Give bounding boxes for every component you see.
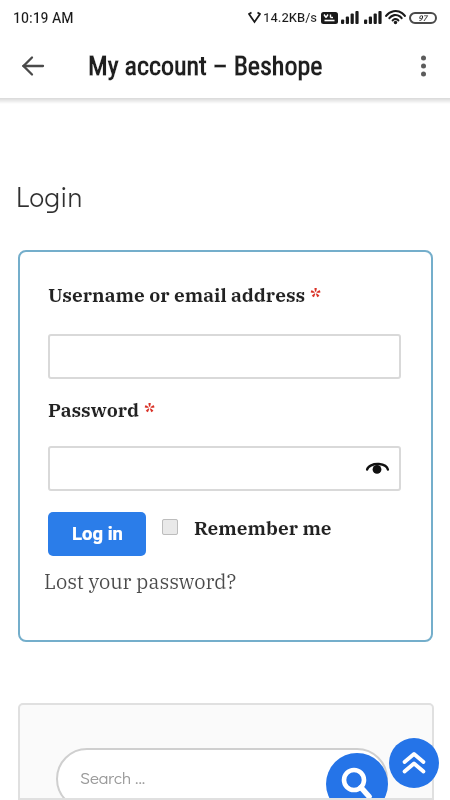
button[interactable]: Lost your password? [44, 568, 237, 594]
staticText: Log in [72, 523, 123, 545]
staticText: Login [16, 178, 83, 215]
button[interactable]: Search ... [56, 748, 388, 800]
button[interactable] [162, 519, 178, 535]
button[interactable] [48, 334, 401, 379]
staticText: Password [48, 398, 144, 423]
staticText: * [144, 398, 156, 423]
button[interactable]: Remember me [194, 516, 332, 541]
staticText: * [310, 283, 322, 308]
button[interactable] [403, 46, 443, 86]
staticText: My account – Beshope [88, 51, 323, 81]
staticText: 14.2KB/s [263, 10, 318, 25]
button[interactable] [13, 46, 53, 86]
staticText: Search ... [80, 766, 146, 788]
button[interactable]: Log in [48, 512, 146, 556]
button[interactable] [326, 753, 388, 800]
button[interactable] [389, 738, 439, 788]
button[interactable] [48, 446, 401, 491]
staticText: 10:19 AM [13, 10, 74, 26]
staticText: Username or email address [48, 283, 310, 308]
staticText: 97 [418, 14, 428, 23]
